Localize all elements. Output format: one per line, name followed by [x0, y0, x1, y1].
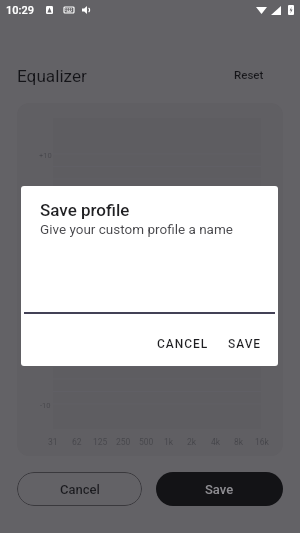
staticText: CANCEL	[157, 337, 209, 351]
staticText: Equalizer	[17, 66, 87, 86]
button[interactable]: CANCEL	[153, 333, 213, 355]
button[interactable]: SAVE	[224, 333, 266, 355]
staticText: 31	[48, 437, 58, 447]
staticText: Give your custom profile a name	[40, 221, 233, 237]
staticText: Reset	[234, 68, 264, 81]
button[interactable]: Save	[156, 472, 283, 506]
button[interactable]: Cancel	[17, 472, 142, 506]
staticText: 2k	[187, 437, 197, 447]
staticText: Save	[205, 482, 234, 497]
staticText: 4k	[211, 437, 221, 447]
staticText: +10	[39, 151, 52, 160]
staticText: 1k	[164, 437, 174, 447]
staticText: Cancel	[60, 482, 100, 497]
staticText: 500	[139, 437, 154, 447]
staticText: 8k	[234, 437, 244, 447]
button[interactable]: Reset	[226, 62, 272, 87]
staticText: 250	[116, 437, 131, 447]
staticText: Save profile	[40, 200, 130, 220]
staticText: 125	[93, 437, 108, 447]
staticText: 16k	[255, 437, 269, 447]
staticText: SAVE	[228, 337, 262, 351]
staticText: 62	[72, 437, 82, 447]
staticText: 10:29	[6, 4, 34, 17]
staticText: -10	[40, 401, 51, 410]
